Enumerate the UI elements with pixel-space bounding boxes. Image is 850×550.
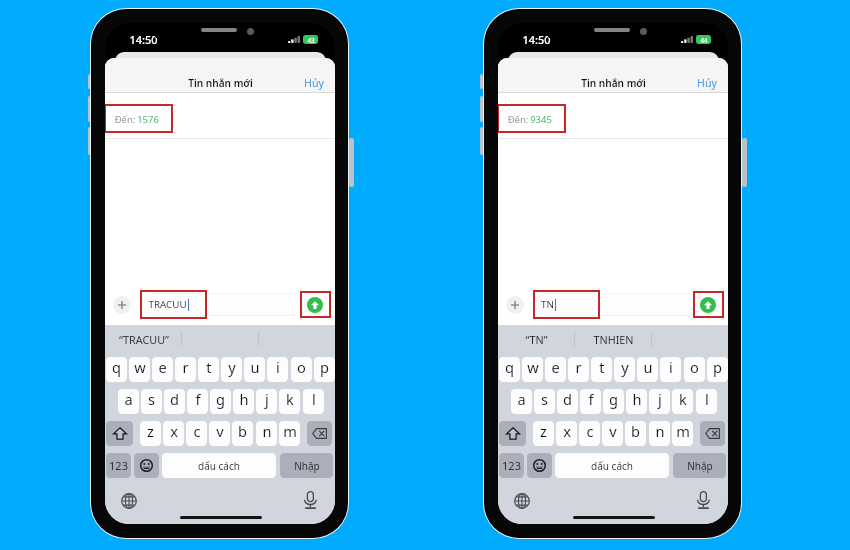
staticText: v [609, 421, 617, 441]
button[interactable]: Dictate [697, 491, 710, 509]
staticText: f [195, 389, 201, 409]
button[interactable]: w [522, 357, 543, 382]
button[interactable]: f [187, 389, 208, 414]
button[interactable]: m [672, 421, 693, 446]
staticText: j [265, 389, 269, 409]
staticText: z [540, 421, 547, 441]
button[interactable]: c [186, 421, 207, 446]
button[interactable]: c [579, 421, 600, 446]
button[interactable]: f [580, 389, 601, 414]
button[interactable]: x [163, 421, 184, 446]
button[interactable]: n [649, 421, 670, 446]
staticText: q [505, 357, 514, 377]
button[interactable]: o [291, 357, 312, 382]
button[interactable]: n [256, 421, 277, 446]
staticText: c [193, 421, 201, 441]
button[interactable]: “TRACUU” [105, 325, 182, 353]
staticText: g [216, 389, 225, 409]
button[interactable] [307, 421, 332, 446]
button[interactable]: t [591, 357, 612, 382]
button[interactable]: q [106, 357, 127, 382]
button[interactable]: r [175, 357, 196, 382]
button[interactable]: d [557, 389, 578, 414]
button[interactable]: j [649, 389, 670, 414]
button[interactable]: p [707, 357, 728, 382]
button[interactable]: b [232, 421, 253, 446]
button[interactable]: k [672, 389, 693, 414]
button[interactable]: j [256, 389, 277, 414]
button[interactable]: 123 [499, 453, 524, 478]
button[interactable]: d [164, 389, 185, 414]
button[interactable]: s [534, 389, 555, 414]
button[interactable] [700, 421, 725, 446]
button[interactable]: o [684, 357, 705, 382]
button[interactable]: x [556, 421, 577, 446]
button[interactable]: dấu cách [555, 453, 669, 478]
button[interactable]: Send [700, 297, 716, 313]
button[interactable]: g [603, 389, 624, 414]
button[interactable]: i [660, 357, 681, 382]
button[interactable]: w [129, 357, 150, 382]
button[interactable]: k [279, 389, 300, 414]
button[interactable]: t [198, 357, 219, 382]
button[interactable]: s [141, 389, 162, 414]
button[interactable]: u [244, 357, 265, 382]
button[interactable]: a [118, 389, 139, 414]
staticText: x [563, 421, 571, 441]
button[interactable]: Nhập [673, 453, 726, 478]
button[interactable]: e [152, 357, 173, 382]
button[interactable]: TN [535, 293, 700, 316]
staticText: t [206, 357, 212, 377]
button[interactable]: u [637, 357, 658, 382]
button[interactable]: z [533, 421, 554, 446]
button[interactable]: y [221, 357, 242, 382]
button[interactable]: TNHIEN [575, 325, 652, 353]
button[interactable]: l [696, 389, 717, 414]
button[interactable] [499, 421, 526, 446]
staticText: b [631, 421, 640, 441]
staticText: y [621, 357, 629, 377]
staticText: Hủy [697, 76, 717, 90]
button[interactable]: g [210, 389, 231, 414]
staticText: m [283, 421, 297, 441]
button[interactable]: v [602, 421, 623, 446]
button[interactable]: m [279, 421, 300, 446]
button[interactable]: q [499, 357, 520, 382]
button[interactable]: “TN” [498, 325, 575, 353]
button[interactable]: Add attachment [506, 296, 524, 314]
staticText: Đến: [506, 113, 530, 126]
button[interactable]: z [140, 421, 161, 446]
staticText: n [262, 421, 272, 441]
button[interactable]: Add attachment [113, 296, 131, 314]
button[interactable] [527, 453, 552, 478]
button[interactable]: TRACUU [142, 293, 307, 316]
button[interactable] [134, 453, 159, 478]
staticText: k [679, 389, 687, 409]
button[interactable]: h [626, 389, 647, 414]
button[interactable]: r [568, 357, 589, 382]
staticText: Nhập [687, 459, 713, 473]
button[interactable]: 123 [106, 453, 131, 478]
button[interactable]: Send [307, 297, 323, 313]
button[interactable]: y [614, 357, 635, 382]
button[interactable]: Switch keyboard language [514, 493, 530, 509]
button[interactable]: v [209, 421, 230, 446]
button[interactable]: b [625, 421, 646, 446]
button[interactable]: e [545, 357, 566, 382]
button[interactable] [106, 421, 133, 446]
staticText: j [658, 389, 662, 409]
button[interactable]: Dictate [304, 491, 317, 509]
staticText: “TN” [525, 332, 548, 347]
button[interactable]: l [303, 389, 324, 414]
button[interactable]: i [267, 357, 288, 382]
staticText: l [705, 389, 709, 409]
staticText: h [632, 389, 642, 409]
button[interactable]: h [233, 389, 254, 414]
button[interactable]: Switch keyboard language [121, 493, 137, 509]
button[interactable]: a [511, 389, 532, 414]
button[interactable]: Nhập [280, 453, 333, 478]
button[interactable]: dấu cách [162, 453, 276, 478]
staticText: a [517, 389, 526, 409]
staticText: q [112, 357, 121, 377]
button[interactable]: p [314, 357, 335, 382]
